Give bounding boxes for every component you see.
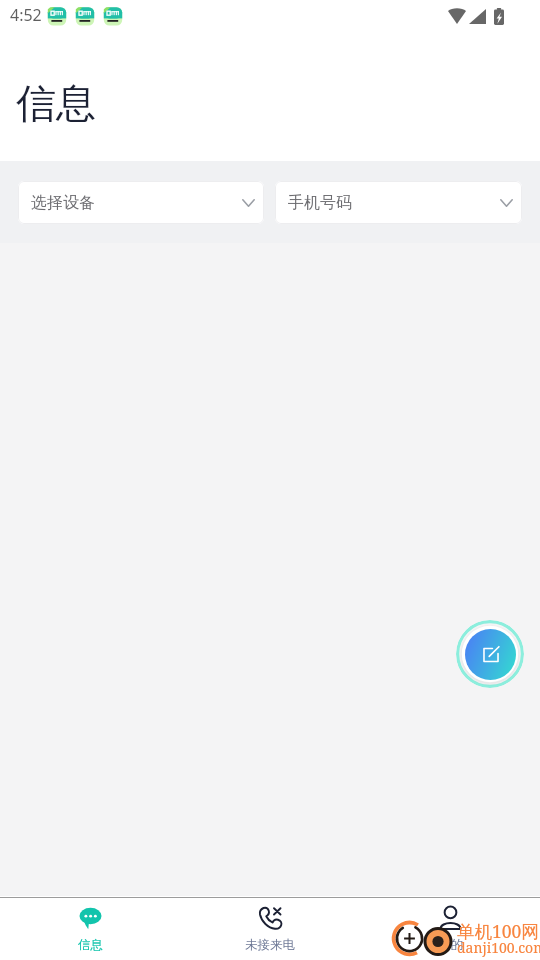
button[interactable]: 选择设备: [18, 181, 264, 224]
staticText: 选择设备: [31, 193, 95, 213]
staticText: 信息: [16, 78, 96, 128]
staticText: 信息: [78, 937, 103, 953]
button[interactable]: 手机号码: [275, 181, 522, 224]
button[interactable]: 信息: [0, 898, 180, 960]
staticText: 4:52: [10, 4, 42, 26]
button[interactable]: 未接来电: [180, 898, 360, 960]
button[interactable]: 我的: [360, 898, 540, 960]
staticText: 未接来电: [245, 937, 295, 953]
button[interactable]: 新建信息: [456, 620, 524, 688]
staticText: 我的: [438, 937, 463, 953]
staticText: 手机号码: [288, 193, 352, 213]
staticText: 单机100网: [457, 919, 539, 943]
staticText: danji100.com: [457, 938, 540, 957]
